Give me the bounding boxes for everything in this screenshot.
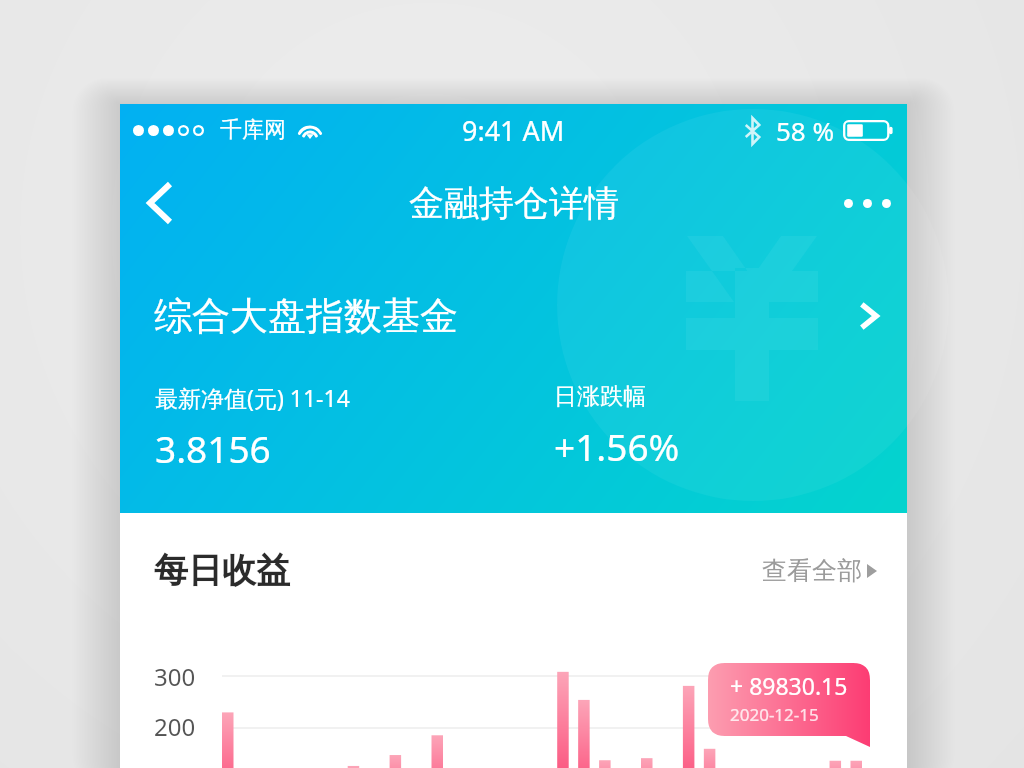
staticText: 日涨跌幅	[554, 382, 646, 411]
staticText: 300	[154, 660, 196, 693]
button[interactable]: 查看全部	[762, 555, 877, 586]
button[interactable]: More options	[838, 174, 896, 232]
staticText: +1.56%	[554, 421, 680, 471]
staticText: 200	[154, 710, 196, 743]
staticText: 综合大盘指数基金	[154, 292, 458, 340]
staticText: 58 %	[776, 113, 835, 148]
staticText: 金融持仓详情	[409, 181, 619, 225]
button[interactable]: 综合大盘指数基金	[120, 281, 907, 351]
staticText: 9:41 AM	[462, 112, 565, 149]
staticText: 2020-12-15	[730, 703, 819, 726]
staticText: 3.8156	[155, 423, 271, 473]
button[interactable]: Back	[132, 175, 188, 231]
staticText: 每日收益	[154, 549, 290, 592]
staticText: 查看全部	[762, 555, 862, 586]
staticText: 千库网	[220, 116, 286, 144]
staticText: + 89830.15	[730, 670, 848, 701]
staticText: 最新净值(元) 11-14	[155, 382, 350, 413]
